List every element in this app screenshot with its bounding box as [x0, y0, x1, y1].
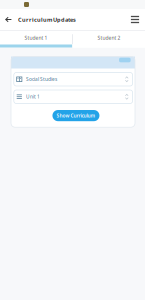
- staticText: Curriculum Updates: [18, 16, 76, 23]
- staticText: Show Curriculum: [56, 112, 95, 119]
- button[interactable]: Social Studies: [14, 72, 133, 86]
- button[interactable]: Back: [0, 9, 18, 30]
- button[interactable]: Menu: [130, 9, 145, 30]
- staticText: Unit 1: [26, 93, 40, 100]
- button[interactable]: Show Curriculum: [52, 110, 99, 121]
- button[interactable]: Unit 1: [14, 90, 133, 103]
- staticText: Social Studies: [26, 76, 57, 82]
- button[interactable]: Student 1: [0, 31, 72, 47]
- staticText: Student 1: [25, 34, 48, 41]
- button[interactable]: Student 2: [73, 31, 145, 47]
- staticText: Student 2: [97, 34, 120, 41]
